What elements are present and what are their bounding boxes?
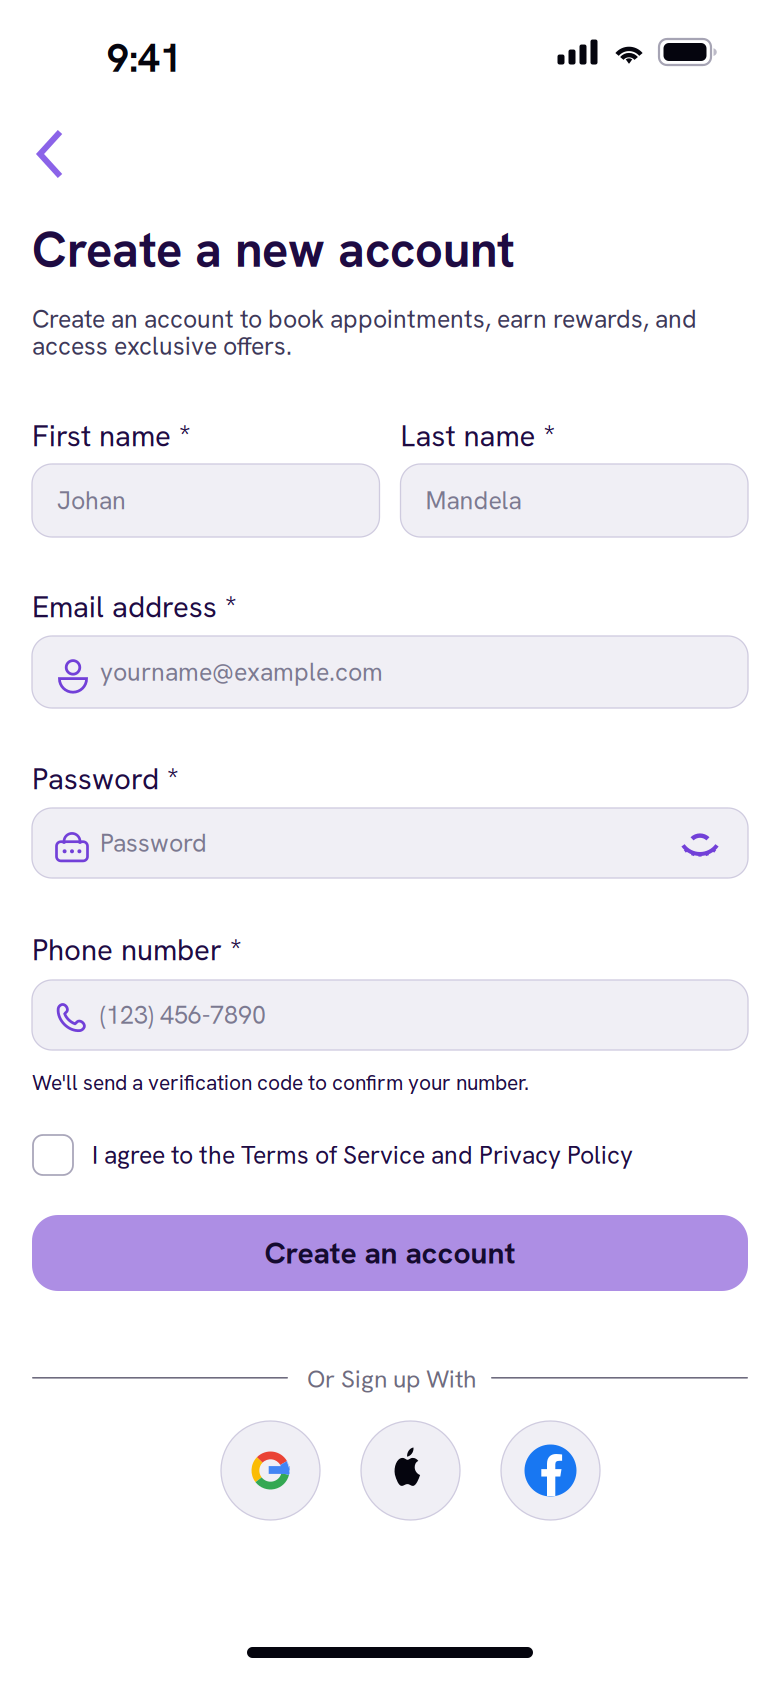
button[interactable]: Sign up with Apple — [361, 1421, 460, 1520]
staticText: Johan — [57, 484, 126, 517]
staticText: Mandela — [425, 484, 521, 517]
staticText: First name * — [32, 417, 191, 455]
staticText: access exclusive offers. — [32, 330, 292, 362]
staticText: I agree to the Terms of Service and Priv… — [92, 1139, 633, 1171]
staticText: (123) 456-7890 — [100, 999, 266, 1031]
staticText: Phone number * — [32, 931, 242, 969]
button[interactable]: Sign up with Google — [221, 1421, 320, 1520]
staticText: Create an account — [264, 1233, 515, 1273]
button[interactable]: Back — [22, 116, 78, 192]
staticText: Password * — [32, 760, 179, 798]
button[interactable]: Show password — [671, 814, 729, 872]
staticText: 9:41 — [107, 33, 182, 83]
staticText: Last name * — [400, 417, 555, 455]
staticText: Email address * — [32, 588, 237, 626]
staticText: yourname@example.com — [100, 656, 383, 688]
staticText: We'll send a verification code to confir… — [32, 1069, 529, 1096]
staticText: Or Sign up With — [307, 1363, 476, 1395]
button[interactable]: Sign up with Facebook — [501, 1421, 600, 1520]
button[interactable]: I agree to the Terms of Service and Priv… — [33, 1133, 749, 1177]
button[interactable]: Create an account — [32, 1215, 748, 1291]
staticText: Create an account to book appointments, … — [32, 303, 697, 335]
staticText: Password — [100, 827, 207, 859]
staticText: Create a new account — [32, 218, 515, 281]
